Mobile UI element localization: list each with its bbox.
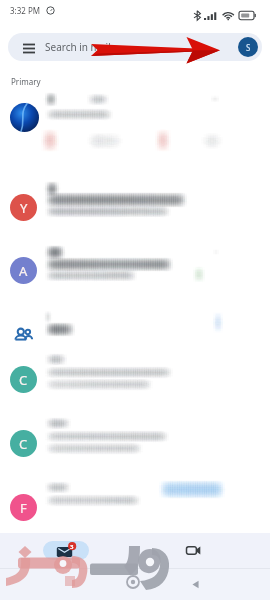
button[interactable]: C [0, 363, 270, 427]
button[interactable] [0, 100, 270, 188]
staticText: S [246, 42, 251, 53]
button[interactable]: A [0, 254, 270, 317]
other: Mail [55, 541, 77, 560]
button[interactable]: C [0, 427, 270, 491]
staticText: F [20, 499, 27, 517]
button[interactable]: S [238, 37, 258, 57]
staticText: 3 [70, 543, 74, 551]
staticText: C [19, 435, 28, 453]
button[interactable]: Back [178, 568, 212, 600]
staticText: C [19, 371, 28, 389]
button[interactable]: Open navigation drawer [8, 33, 262, 61]
other: Open navigation drawer [23, 41, 35, 53]
button[interactable]: Group conversation [0, 319, 270, 363]
staticText: Primary [11, 76, 41, 87]
staticText: A [19, 262, 28, 280]
button[interactable]: Y [0, 191, 270, 254]
button[interactable]: Meet [150, 533, 236, 568]
staticText: 3:32 PM [10, 5, 41, 16]
staticText: Y [20, 199, 28, 217]
staticText: Search in mail [45, 40, 111, 54]
other: Meet [185, 542, 202, 559]
button[interactable]: Mail [20, 533, 135, 568]
button[interactable]: F [0, 491, 270, 533]
other: Group conversation [10, 322, 37, 349]
